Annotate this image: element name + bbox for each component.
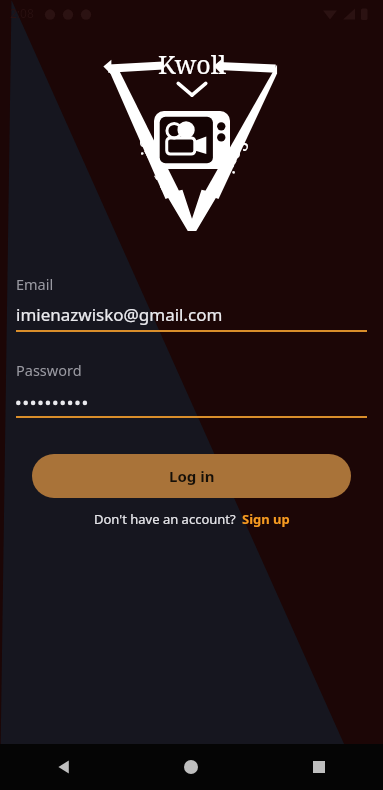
staticText: 2:08: [10, 5, 34, 21]
button[interactable]: Password: [16, 360, 367, 418]
button[interactable]: Recent apps: [255, 744, 383, 790]
staticText: imienazwisko@gmail.com: [16, 303, 223, 326]
staticText: Movie: [129, 132, 180, 194]
button[interactable]: Email: [16, 274, 367, 332]
staticText: Log in: [169, 466, 215, 486]
staticText: Email: [16, 274, 54, 294]
staticText: Sign up: [242, 510, 290, 528]
button[interactable]: Home: [127, 744, 255, 790]
staticText: Kwoll: [158, 47, 227, 81]
button[interactable]: Log in: [32, 454, 351, 498]
staticText: Series: [206, 135, 255, 195]
button[interactable]: Back: [0, 744, 127, 790]
staticText: Password: [16, 360, 82, 380]
button[interactable]: Sign up: [242, 510, 290, 528]
staticText: Don't have an account?: [94, 510, 236, 528]
